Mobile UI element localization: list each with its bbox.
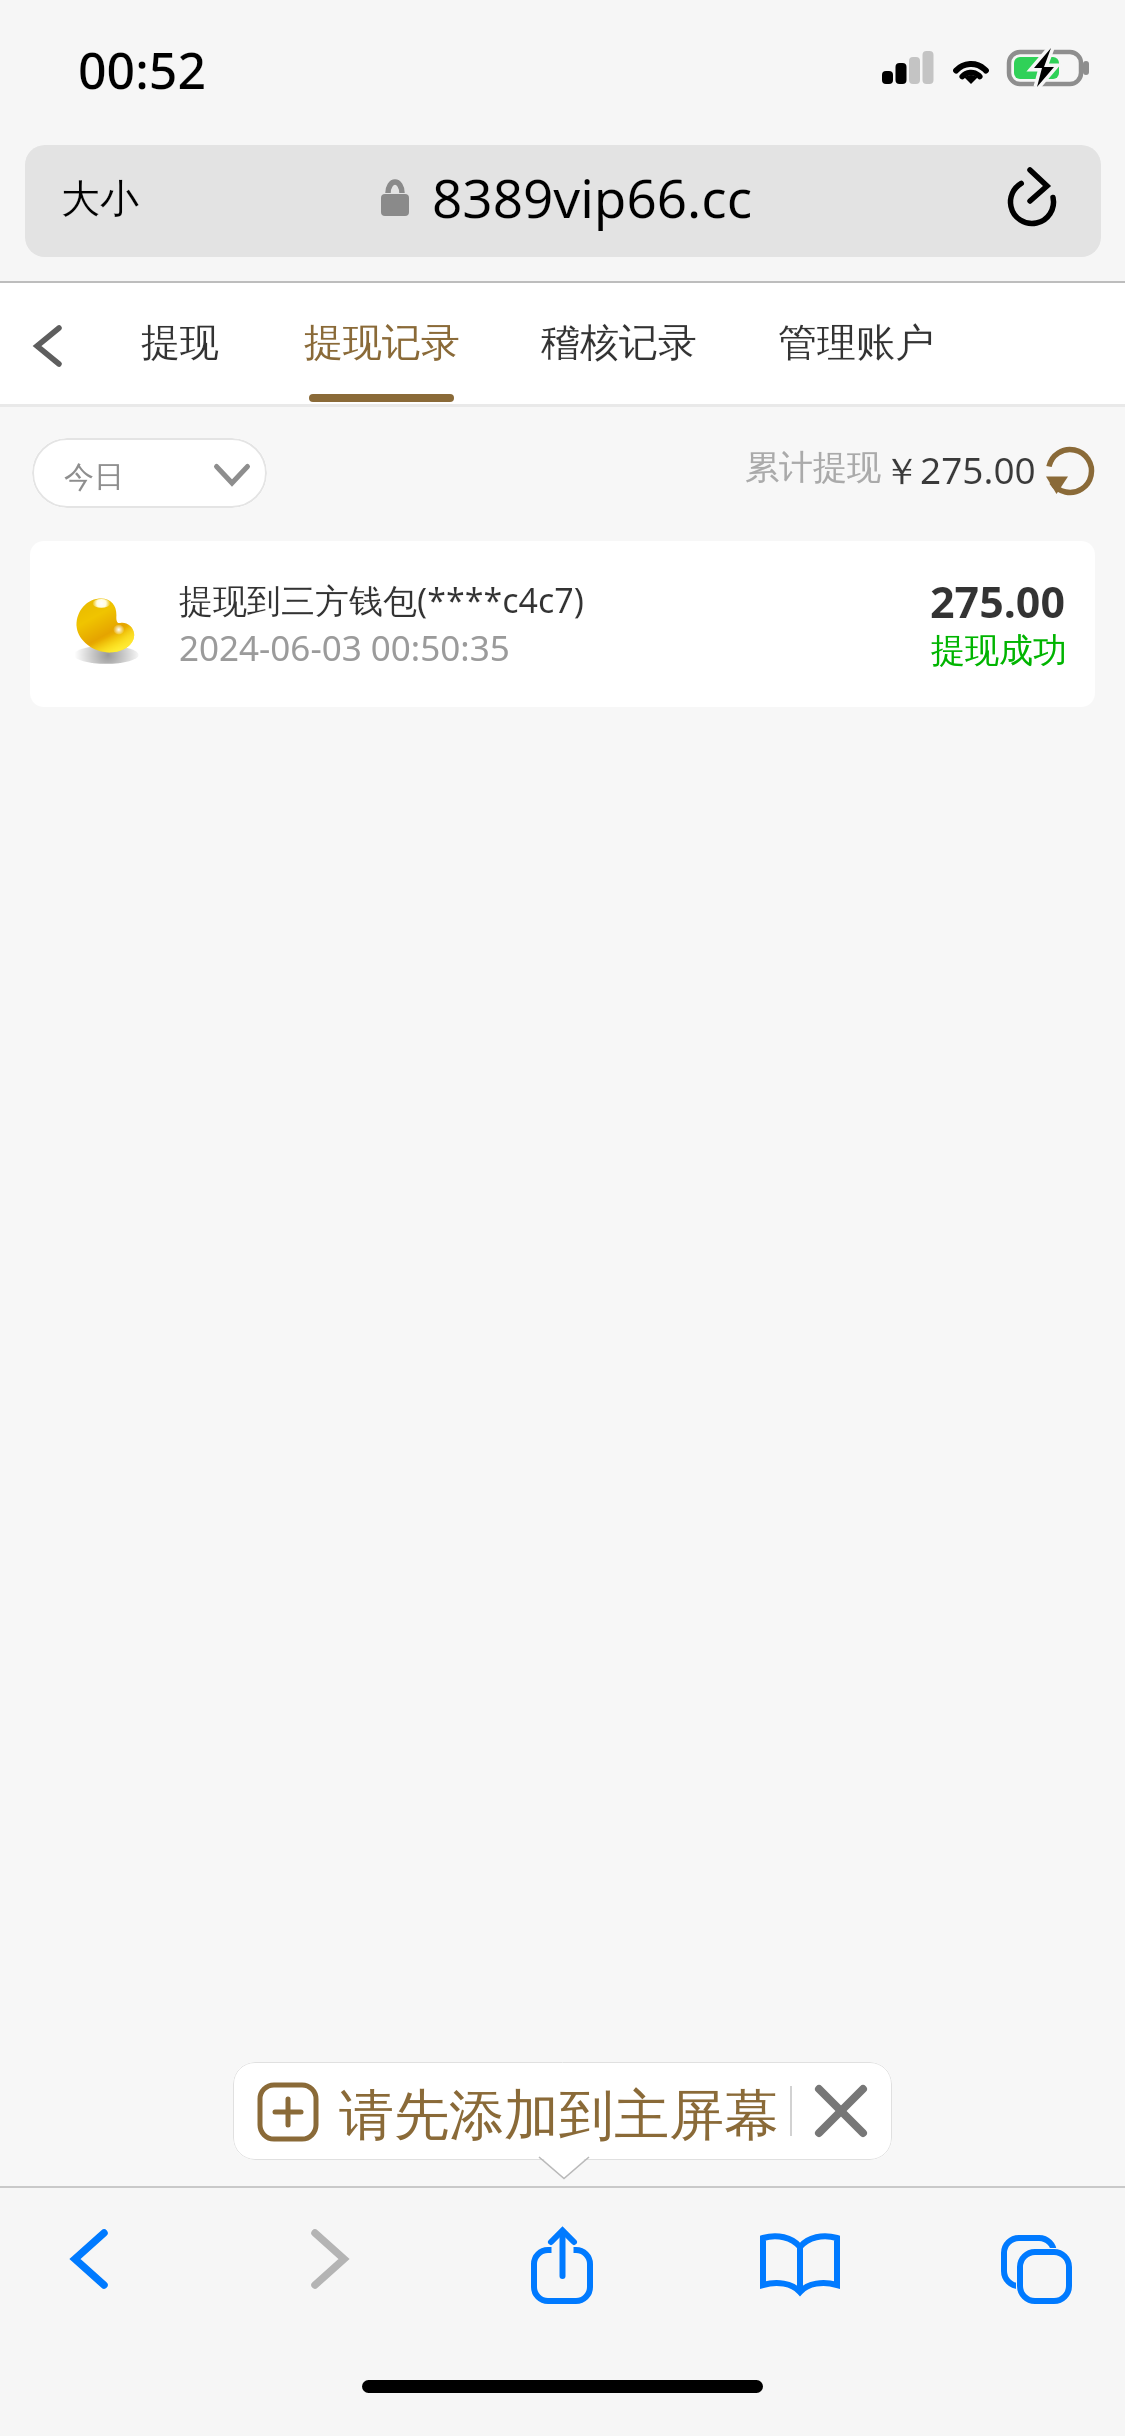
button[interactable]: 稽核记录 [530,283,707,407]
staticText: 累计提现 [745,446,881,489]
staticText: ￥275.00 [883,444,1036,495]
button[interactable]: Forward [275,2186,387,2346]
button[interactable]: 提现到三方钱包(****c4c7) [30,541,1095,707]
staticText: 请先添加到主屏幕 [339,2081,779,2150]
button[interactable]: Close [815,2085,867,2137]
button[interactable]: 管理账户 [767,283,944,407]
staticText: 00:52 [78,36,206,104]
button[interactable]: 提现 [125,283,235,407]
staticText: 提现到三方钱包(****c4c7) [179,577,584,623]
staticText: 管理账户 [778,318,934,367]
button[interactable]: Bookmarks [743,2186,855,2346]
staticText: 大小 [61,174,139,223]
button[interactable]: Share [507,2186,619,2346]
staticText: 8389vip66.cc [432,161,753,233]
button[interactable]: Reload [1000,150,1098,248]
button[interactable]: 大小 [25,145,1101,257]
button[interactable]: 请先添加到主屏幕 [233,2062,892,2160]
staticText: 稽核记录 [541,318,697,367]
button[interactable]: Tabs [982,2186,1094,2346]
staticText: 提现成功 [931,629,1067,672]
staticText: 提现 [141,318,219,367]
staticText: 275.00 [930,572,1066,631]
staticText: 今日 [64,458,124,496]
button[interactable]: 今日 [32,438,267,508]
button[interactable]: 累计提现 [735,437,1105,503]
button[interactable]: 提现记录 [293,283,470,407]
button[interactable]: Back [4,295,92,383]
staticText: 2024-06-03 00:50:35 [179,624,510,672]
button[interactable]: Back [33,2186,145,2346]
staticText: 提现记录 [304,318,460,367]
other: Refresh [1046,447,1102,503]
